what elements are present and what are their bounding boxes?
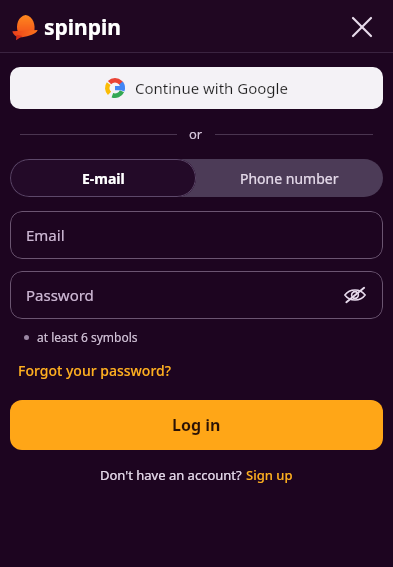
button[interactable]: Show password [339, 279, 371, 311]
staticText: at least 6 symbols [37, 329, 138, 345]
button[interactable]: E-mail [10, 159, 196, 197]
button[interactable]: Log in [10, 400, 383, 450]
button[interactable]: Continue with Google [10, 67, 383, 109]
button[interactable]: Forgot your password? [18, 361, 171, 380]
staticText: Email [26, 225, 65, 245]
staticText: Phone number [240, 169, 339, 188]
staticText: spinpin [44, 13, 121, 42]
staticText: E-mail [82, 169, 125, 188]
button[interactable]: Password [10, 271, 383, 319]
staticText: Password [26, 285, 94, 305]
button[interactable]: Close [345, 10, 379, 44]
staticText: Continue with Google [135, 78, 288, 98]
staticText: or [189, 125, 203, 143]
staticText: Don't have an account? [100, 466, 246, 484]
button[interactable]: Phone number [196, 159, 383, 197]
staticText: Forgot your password? [18, 361, 171, 380]
button[interactable]: Email [10, 211, 383, 259]
button[interactable]: Sign up [246, 466, 293, 484]
staticText: Log in [172, 414, 221, 436]
staticText: Sign up [246, 466, 293, 484]
